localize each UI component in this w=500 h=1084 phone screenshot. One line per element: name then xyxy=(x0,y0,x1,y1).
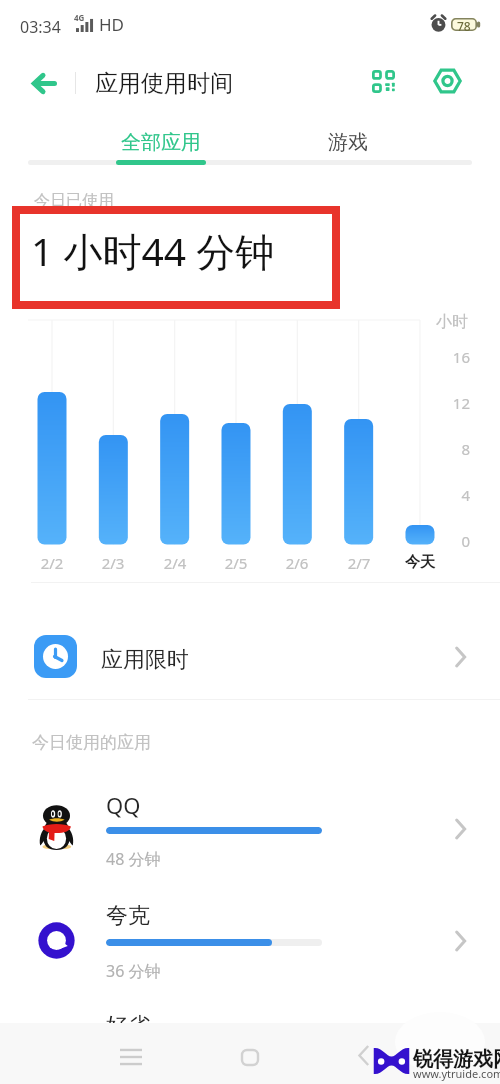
staticText: 2/3 xyxy=(93,553,133,573)
staticText: 36 分钟 xyxy=(106,960,161,982)
staticText: 应用限时 xyxy=(101,646,189,674)
staticText: 0 xyxy=(440,531,470,551)
staticText: 夸克 xyxy=(106,902,150,930)
staticText: QQ xyxy=(106,790,141,820)
staticText: HD xyxy=(99,13,125,36)
staticText: 2/5 xyxy=(216,553,256,573)
staticText: www.ytruide.com xyxy=(413,1066,500,1081)
button[interactable]: Back xyxy=(22,61,66,105)
staticText: 16 xyxy=(440,347,470,367)
staticText: 12 xyxy=(440,393,470,413)
button[interactable]: 应用限时 xyxy=(0,600,500,698)
staticText: 4 xyxy=(440,485,470,505)
staticText: 今天 xyxy=(400,553,440,572)
staticText: 今日使用的应用 xyxy=(32,732,151,753)
staticText: 2/4 xyxy=(155,553,195,573)
staticText: 4G xyxy=(74,12,85,23)
staticText: 游戏 xyxy=(328,130,368,155)
staticText: 应用使用时间 xyxy=(95,69,233,98)
staticText: 1 小时44 分钟 xyxy=(31,224,275,277)
button[interactable] xyxy=(250,115,500,165)
staticText: 今日已使用 xyxy=(34,191,114,211)
button[interactable]: Back xyxy=(342,1033,386,1077)
staticText: 78 xyxy=(457,18,471,31)
button[interactable]: Home xyxy=(228,1035,272,1079)
staticText: 小时 xyxy=(436,312,468,332)
staticText: 好省 xyxy=(106,1012,150,1040)
button[interactable]: Settings xyxy=(426,60,468,102)
staticText: 2/6 xyxy=(277,553,317,573)
button[interactable]: Recent apps xyxy=(109,1035,153,1079)
staticText: 2/7 xyxy=(339,553,379,573)
button[interactable]: 夸克 xyxy=(0,887,500,999)
button[interactable]: QQ xyxy=(0,775,500,887)
staticText: 03:34 xyxy=(20,16,61,38)
button[interactable]: Scan QR code xyxy=(362,60,404,102)
staticText: 2/2 xyxy=(32,553,72,573)
button[interactable] xyxy=(0,115,250,165)
staticText: 48 分钟 xyxy=(106,848,161,870)
staticText: 8 xyxy=(440,439,470,459)
staticText: 锐得游戏网 xyxy=(413,1047,500,1072)
staticText: 全部应用 xyxy=(121,130,201,155)
